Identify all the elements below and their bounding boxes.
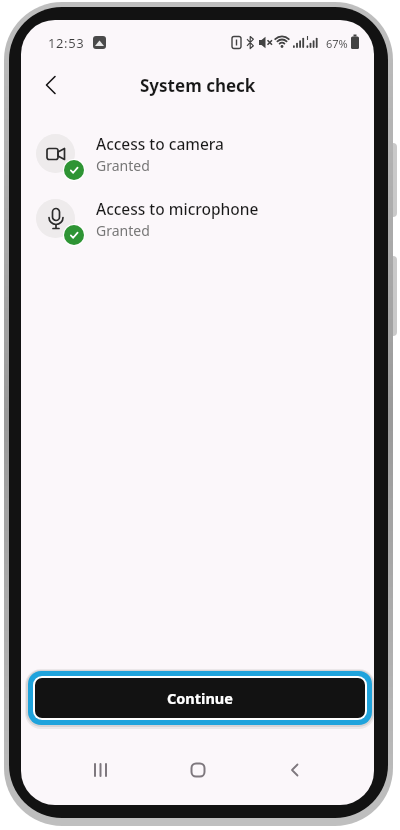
staticText: Access to camera bbox=[96, 133, 224, 154]
button[interactable]: Access to microphone bbox=[31, 198, 364, 256]
button[interactable] bbox=[31, 65, 71, 105]
button[interactable] bbox=[173, 750, 223, 790]
staticText: Continue bbox=[167, 688, 233, 708]
staticText: 12:53 bbox=[48, 34, 85, 52]
button[interactable] bbox=[270, 750, 320, 790]
staticText: 67% bbox=[326, 36, 348, 51]
staticText: Granted bbox=[96, 156, 150, 175]
button[interactable]: Access to camera bbox=[31, 133, 364, 191]
button[interactable]: Continue bbox=[28, 671, 372, 725]
staticText: System check bbox=[140, 74, 256, 97]
staticText: Granted bbox=[96, 221, 150, 240]
staticText: Access to microphone bbox=[96, 198, 259, 219]
button[interactable] bbox=[76, 750, 126, 790]
